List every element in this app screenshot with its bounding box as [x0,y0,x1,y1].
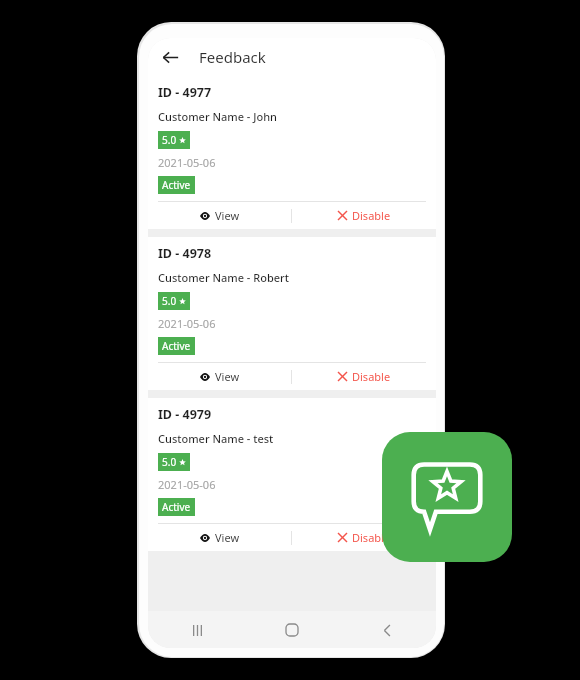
staticText: Customer Name - John [158,109,277,124]
button[interactable]: View [148,363,291,390]
staticText: Customer Name - Robert [158,270,289,285]
button[interactable]: View [148,524,291,551]
staticText: ID - 4978 [158,245,212,262]
button[interactable]: Disable [292,363,436,390]
staticText: 5.0 [162,294,177,308]
button[interactable]: Home [277,615,307,645]
staticText: Active [162,339,191,353]
staticText: Active [162,500,191,514]
staticText: View [215,530,240,545]
button[interactable]: ID - 4979 [148,398,436,551]
staticText: View [215,369,240,384]
button[interactable]: ID - 4977 [148,76,436,229]
button[interactable]: ID - 4978 [148,237,436,390]
button[interactable]: Back [154,41,186,73]
staticText: View [215,208,240,223]
button[interactable]: Recent apps [182,615,212,645]
staticText: Active [162,178,191,192]
staticText: 2021-05-06 [158,155,216,170]
button[interactable]: Back [372,615,402,645]
staticText: ID - 4979 [158,406,212,423]
staticText: 2021-05-06 [158,316,216,331]
staticText: Disable [352,369,391,384]
staticText: Feedback [199,47,266,67]
staticText: ID - 4977 [158,84,212,101]
staticText: Disable [352,208,391,223]
staticText: 2021-05-06 [158,477,216,492]
button[interactable]: Disable [292,524,436,551]
button[interactable]: Feedback app icon [382,432,512,562]
button[interactable]: Disable [292,202,436,229]
staticText: 5.0 [162,455,177,469]
staticText: Disable [352,530,391,545]
button[interactable]: View [148,202,291,229]
staticText: Customer Name - test [158,431,274,446]
staticText: 5.0 [162,133,177,147]
